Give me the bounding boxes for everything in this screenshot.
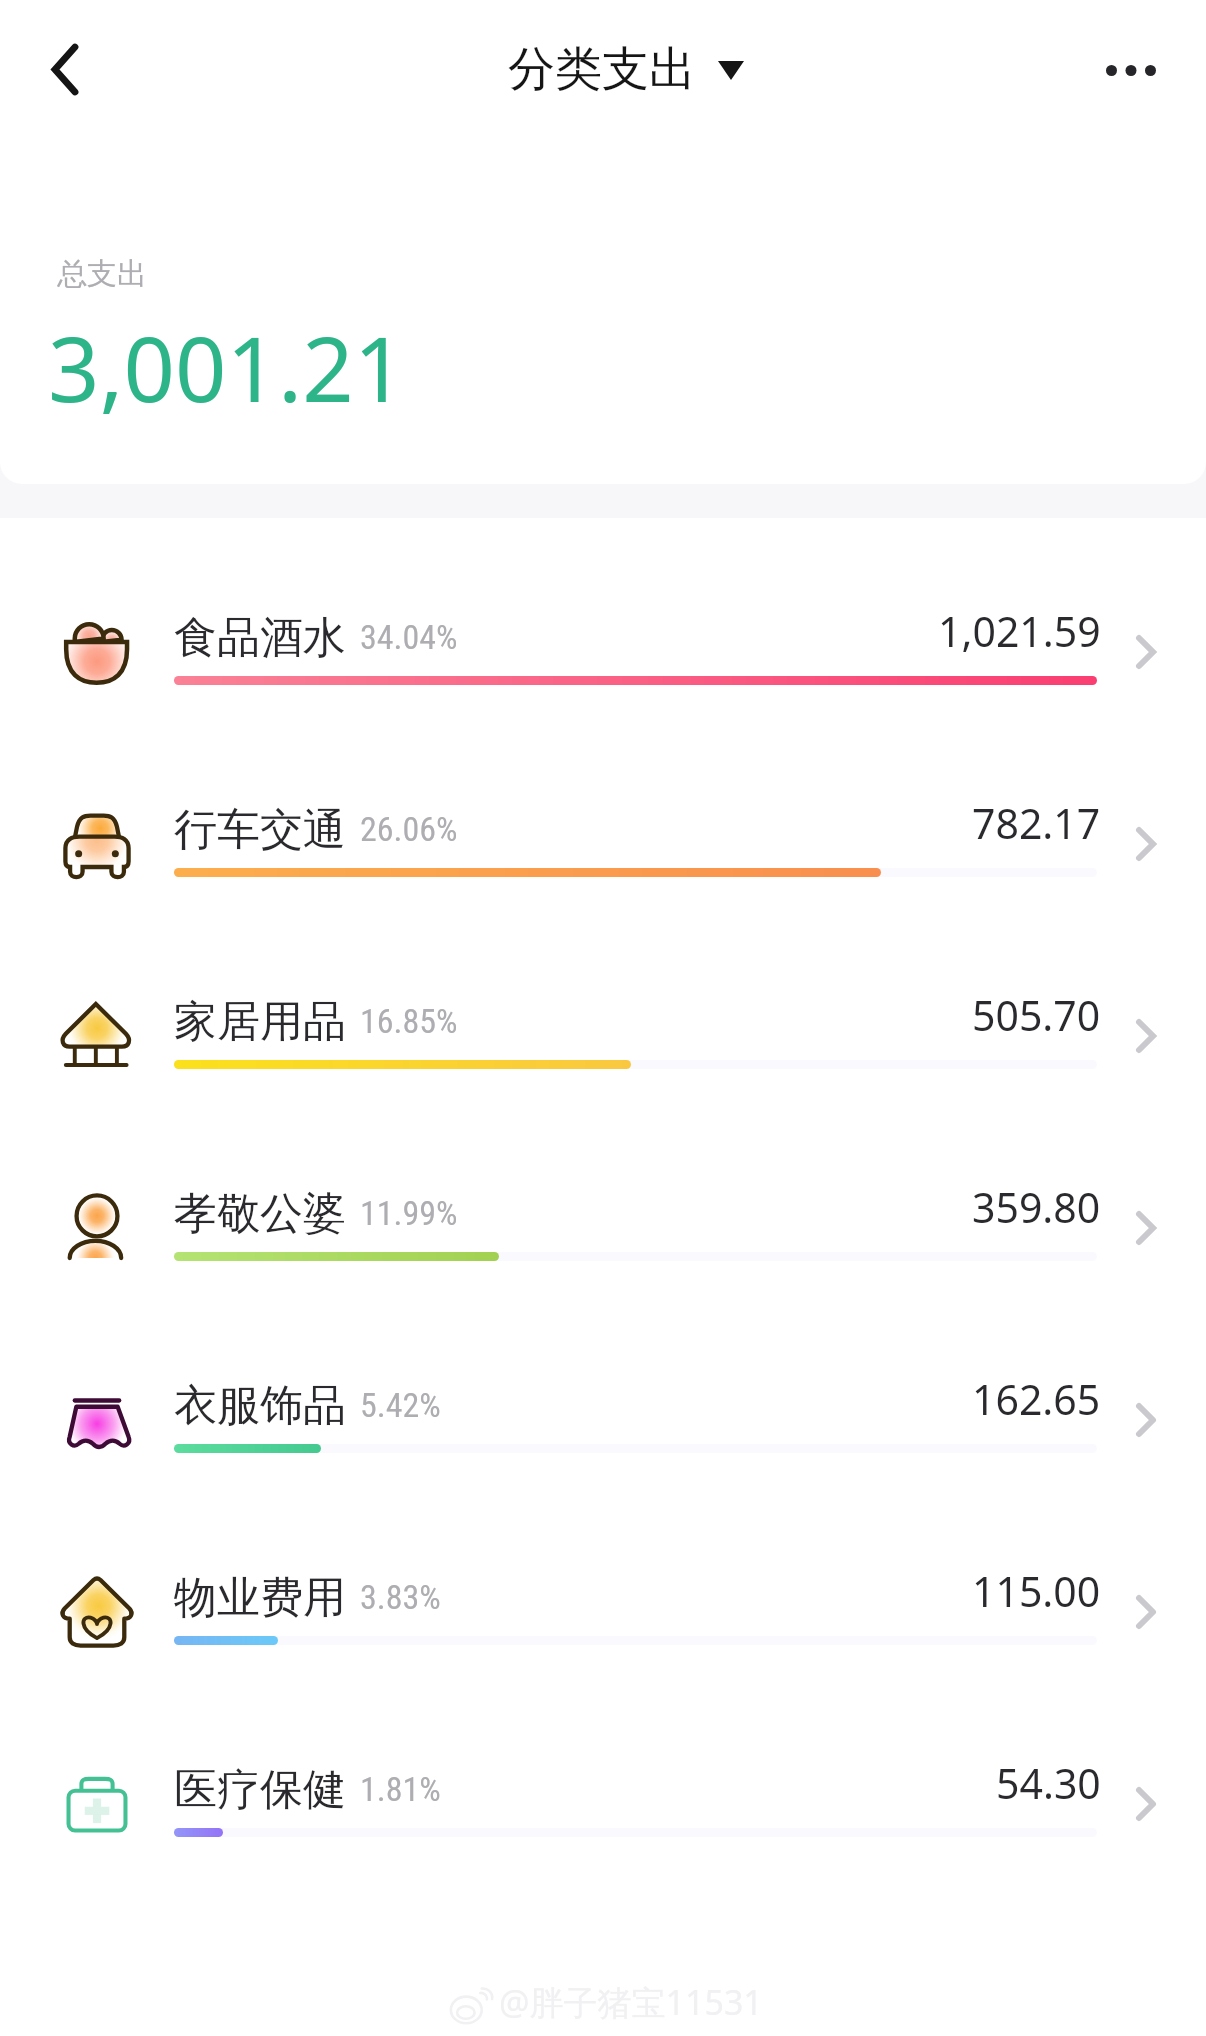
staticText: 782.17 (972, 795, 1101, 851)
staticText: 医疗保健 (174, 1763, 346, 1817)
staticText: 162.65 (972, 1371, 1101, 1427)
staticText: 16.85% (360, 1001, 458, 1041)
staticText: 衣服饰品 (174, 1379, 346, 1433)
staticText: 1,021.59 (938, 603, 1101, 659)
staticText: 孝敬公婆 (174, 1187, 346, 1241)
button[interactable]: 衣服饰品 (0, 1368, 1206, 1464)
button[interactable]: 分类支出 (508, 40, 744, 99)
staticText: 54.30 (996, 1755, 1101, 1811)
button[interactable]: 家居用品 (0, 984, 1206, 1080)
staticText: 34.04% (360, 617, 458, 657)
button[interactable]: 行车交通 (0, 792, 1206, 888)
staticText: 505.70 (972, 987, 1101, 1043)
button[interactable]: 孝敬公婆 (0, 1176, 1206, 1272)
staticText: 行车交通 (174, 803, 346, 857)
staticText: 115.00 (972, 1563, 1101, 1619)
staticText: @胖子猪宝11531 (499, 1979, 763, 2025)
staticText: 3,001.21 (48, 306, 406, 429)
button[interactable]: 医疗保健 (0, 1752, 1206, 1848)
staticText: 3.83% (360, 1577, 441, 1617)
staticText: 物业费用 (174, 1571, 346, 1625)
staticText: 26.06% (360, 809, 458, 849)
staticText: 总支出 (57, 255, 147, 293)
staticText: 分类支出 (508, 40, 696, 99)
button[interactable]: More options (1086, 25, 1176, 115)
button[interactable]: Back (20, 24, 110, 114)
staticText: 1.81% (360, 1769, 441, 1809)
staticText: 359.80 (972, 1179, 1101, 1235)
button[interactable]: 物业费用 (0, 1560, 1206, 1656)
staticText: 5.42% (360, 1385, 441, 1425)
staticText: 11.99% (360, 1193, 458, 1233)
staticText: 家居用品 (174, 995, 346, 1049)
staticText: 食品酒水 (174, 611, 346, 665)
button[interactable]: 食品酒水 (0, 600, 1206, 696)
